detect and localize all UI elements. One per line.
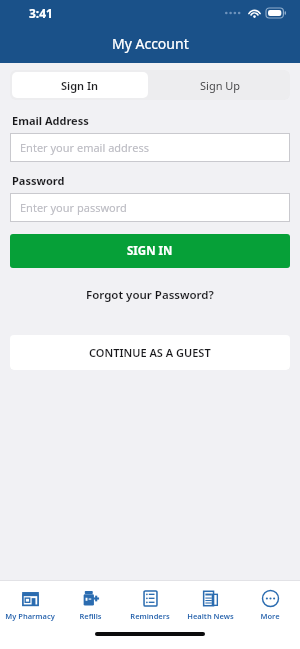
staticText: More (260, 611, 280, 621)
button[interactable]: Sign Up (150, 70, 290, 100)
button[interactable]: Sign In (12, 72, 148, 98)
button[interactable]: My Pharmacy (0, 581, 60, 628)
button[interactable]: More (240, 581, 300, 628)
staticText: Sign In (61, 78, 99, 93)
button[interactable]: Forgot your Password? (76, 283, 224, 307)
staticText: Sign Up (200, 78, 241, 93)
staticText: Refills (79, 611, 102, 621)
button[interactable]: Refills (60, 581, 120, 628)
button[interactable]: Health News (180, 581, 240, 628)
staticText: SIGN IN (127, 243, 173, 259)
staticText: CONTINUE AS A GUEST (89, 345, 211, 360)
button[interactable]: Enter your email address (10, 133, 290, 162)
button[interactable]: Reminders (120, 581, 180, 628)
staticText: My Pharmacy (5, 611, 55, 621)
button[interactable]: CONTINUE AS A GUEST (10, 335, 290, 370)
staticText: Health News (187, 611, 234, 621)
staticText: Reminders (130, 611, 170, 621)
staticText: Enter your password (20, 200, 127, 215)
staticText: Enter your email address (20, 140, 149, 155)
button[interactable]: Enter your password (10, 193, 290, 222)
staticText: My Account (112, 34, 189, 53)
staticText: Email Address (12, 113, 89, 128)
button[interactable]: SIGN IN (10, 234, 290, 268)
staticText: 3:41 (29, 5, 53, 21)
staticText: Password (12, 173, 65, 188)
